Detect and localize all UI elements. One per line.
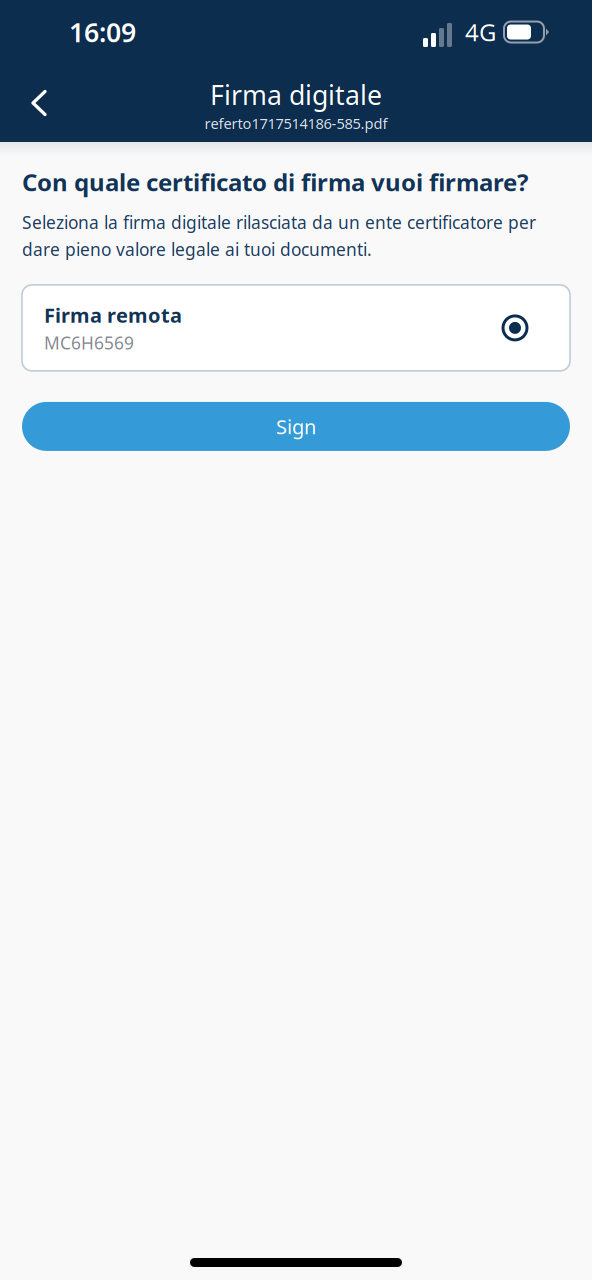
button[interactable]: Back [0,64,80,142]
button[interactable]: Firma remota [22,285,570,371]
staticText: 4G [465,16,496,48]
button[interactable]: Sign [22,402,570,451]
staticText: Con quale certificato di firma vuoi firm… [22,166,528,198]
staticText: MC6H6569 [44,331,134,354]
staticText: 16:09 [69,14,136,50]
staticText: Firma digitale [210,77,382,112]
staticText: Sign [276,413,316,440]
staticText: Firma remota [44,302,182,328]
staticText: referto1717514186-585.pdf [204,113,387,133]
staticText: Seleziona la firma digitale rilasciata d… [22,211,536,261]
